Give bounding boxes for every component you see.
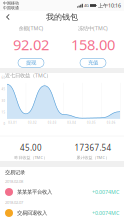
staticText: 4G	[84, 3, 89, 8]
staticText: 45.00	[20, 142, 42, 153]
staticText: 03-01	[8, 121, 17, 124]
staticText: 92.02	[13, 35, 49, 54]
staticText: 充值	[88, 59, 98, 66]
button[interactable]: 充值	[80, 58, 106, 67]
staticText: +0.0074MC	[92, 209, 119, 217]
staticText: 余额(TMC)	[18, 25, 43, 32]
staticText: 近七日收益（TMC）	[5, 72, 51, 79]
button[interactable]: 提现	[18, 58, 44, 67]
button[interactable]: Back	[2, 11, 14, 23]
staticText: 03-04	[67, 121, 76, 124]
staticText: 提现	[26, 59, 36, 66]
staticText: 17367.54	[74, 142, 111, 153]
staticText: 2018-02-08	[5, 179, 23, 184]
staticText: 中国移动	[3, 1, 19, 5]
staticText: 03-03	[48, 121, 57, 124]
staticText: 累计收益（TMC）	[76, 155, 109, 160]
staticText: 中国联通	[3, 5, 19, 10]
button[interactable]: 交易回退收入	[0, 206, 124, 220]
staticText: 上午10:16	[98, 2, 121, 9]
staticText: 03-02	[28, 121, 37, 124]
staticText: 03-06	[107, 121, 116, 124]
staticText: 昨日收益（TMC）	[14, 155, 47, 160]
staticText: 15	[1, 111, 5, 114]
staticText: 30	[1, 99, 5, 103]
staticText: 某某某平台收入	[17, 189, 52, 195]
staticText: 我的钱包	[46, 12, 78, 22]
staticText: 03-05	[87, 121, 96, 124]
staticText: +0.0074MC	[92, 188, 119, 196]
staticText: 158.00	[71, 35, 115, 54]
staticText: 冻结中(TMC)	[78, 25, 108, 32]
staticText: 0	[3, 122, 5, 126]
staticText: 2018-02-07	[5, 200, 23, 205]
staticText: 45	[1, 88, 5, 91]
staticText: 交易记录	[5, 169, 25, 176]
staticText: 60	[1, 76, 5, 79]
button[interactable]: 某某某平台收入	[0, 185, 124, 199]
staticText: 交易回退收入	[17, 210, 47, 216]
